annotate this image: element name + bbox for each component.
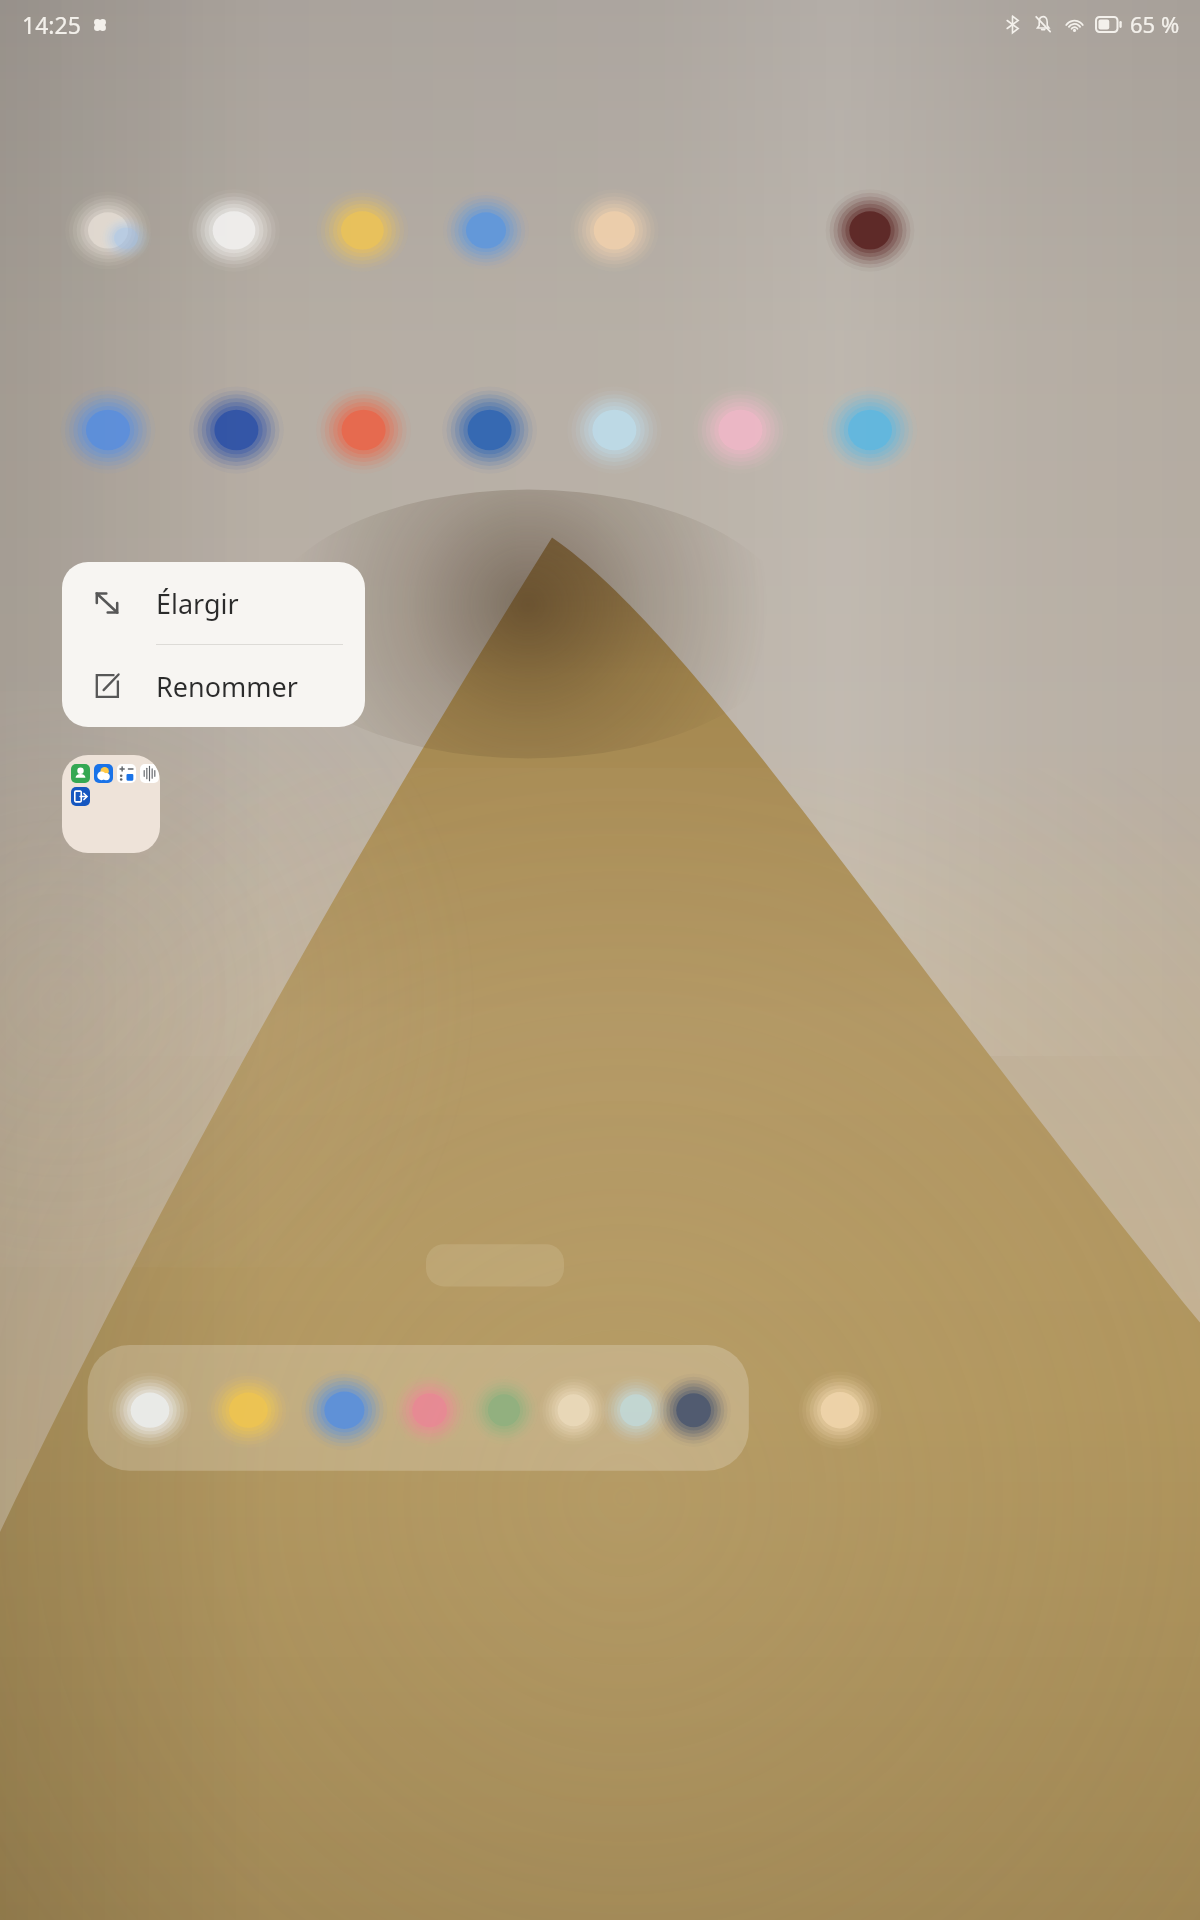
staticText: 65 % xyxy=(1130,9,1180,39)
button[interactable]: Dossier d'applications xyxy=(62,755,160,853)
staticText: Élargir xyxy=(156,585,239,622)
staticText: Renommer xyxy=(156,668,298,705)
button[interactable]: Élargir le dossier xyxy=(62,562,365,644)
staticText: 14:25 xyxy=(22,9,81,40)
button[interactable]: Renommer le dossier xyxy=(62,645,365,727)
